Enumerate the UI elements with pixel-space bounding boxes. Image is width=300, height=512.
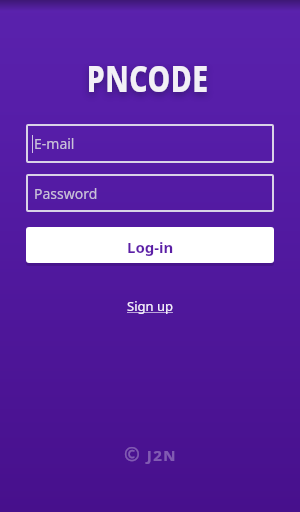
button[interactable]: E-mail xyxy=(26,124,274,163)
staticText: Password xyxy=(34,184,98,203)
button[interactable]: Password xyxy=(26,174,274,212)
button[interactable]: Sign up xyxy=(127,297,173,315)
staticText: E-mail xyxy=(34,134,75,153)
staticText: PNCODE xyxy=(87,53,209,103)
staticText: Sign up xyxy=(127,297,173,315)
button[interactable]: Log-in xyxy=(26,227,274,263)
staticText: Log-in xyxy=(127,237,174,257)
staticText: © J2N xyxy=(124,441,177,467)
